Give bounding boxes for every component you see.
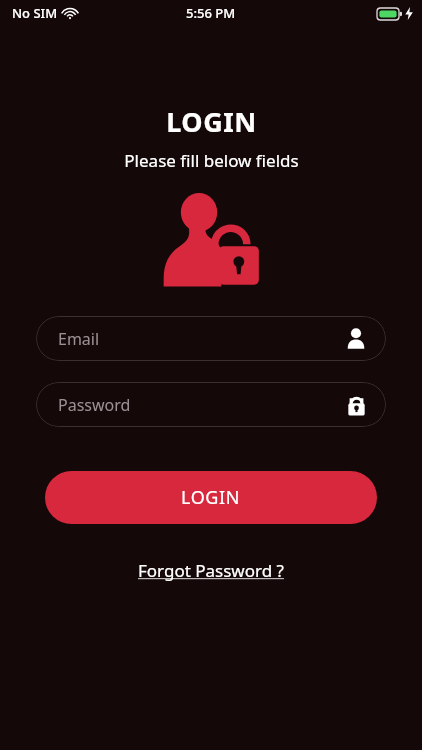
staticText: Forgot Password ?	[138, 559, 284, 582]
staticText: Please fill below fields	[124, 149, 299, 172]
button[interactable]: Password	[36, 382, 386, 427]
button[interactable]: Email	[36, 316, 386, 361]
staticText: Password	[58, 394, 131, 416]
button[interactable]: LOGIN	[45, 471, 377, 524]
staticText: Email	[58, 328, 100, 350]
button[interactable]: Forgot Password ?	[128, 554, 294, 587]
staticText: LOGIN	[181, 485, 241, 510]
other: Login user unlocked	[159, 194, 263, 288]
staticText: LOGIN	[166, 103, 257, 140]
staticText: 5:56 PM	[186, 4, 236, 22]
staticText: No SIM	[12, 4, 58, 22]
